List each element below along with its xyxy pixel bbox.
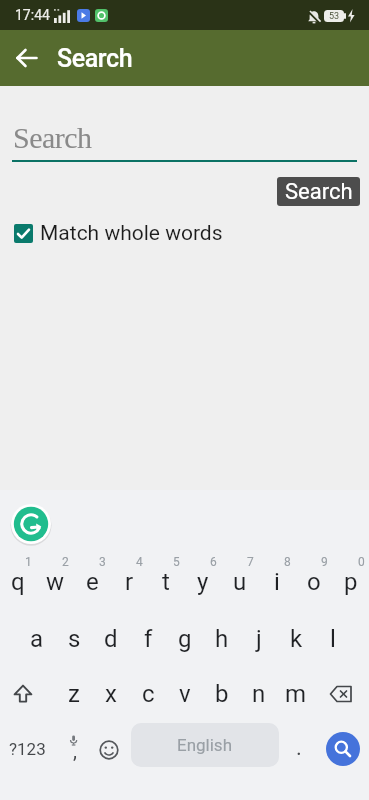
staticText: y [197, 568, 209, 596]
staticText: p [344, 568, 358, 596]
button[interactable]: a [19, 623, 55, 655]
staticText: 17:44 [15, 7, 50, 23]
button[interactable]: q [0, 566, 36, 598]
button[interactable]: k [278, 623, 314, 655]
staticText: m [285, 680, 307, 708]
button[interactable]: p [333, 566, 369, 598]
staticText: a [30, 625, 44, 653]
staticText: 4 [136, 555, 143, 569]
staticText: n [252, 680, 266, 708]
staticText: k [290, 625, 303, 653]
button[interactable]: g [167, 623, 203, 655]
button[interactable]: x [93, 678, 129, 710]
button[interactable] [324, 678, 358, 710]
staticText: 9 [321, 555, 328, 569]
button[interactable]: Match whole words [14, 220, 223, 246]
staticText: g [178, 625, 192, 653]
button[interactable]: y [185, 566, 221, 598]
staticText: t [162, 568, 170, 596]
staticText: . [296, 735, 302, 761]
button[interactable]: h [204, 623, 240, 655]
staticText: x [105, 680, 117, 708]
staticText: i [274, 568, 280, 596]
staticText: Search [285, 179, 353, 205]
button[interactable]: . [291, 733, 307, 763]
staticText: b [215, 680, 229, 708]
staticText: 53 [329, 11, 340, 22]
button[interactable]: f [130, 623, 166, 655]
button[interactable]: d [93, 623, 129, 655]
staticText: Match whole words [40, 221, 223, 246]
staticText: u [233, 568, 247, 596]
staticText: r [125, 568, 134, 596]
button[interactable]: Search [277, 177, 360, 206]
staticText: e [86, 568, 99, 596]
staticText: d [104, 625, 118, 653]
staticText: j [256, 625, 262, 653]
staticText: 7 [247, 555, 254, 569]
staticText: , [73, 739, 77, 762]
button[interactable]: s [56, 623, 92, 655]
staticText: c [142, 680, 155, 708]
button[interactable] [326, 732, 360, 766]
staticText: 6 [210, 555, 217, 569]
button[interactable]: u [222, 566, 258, 598]
button[interactable]: English [131, 723, 279, 767]
button[interactable]: v [167, 678, 203, 710]
staticText: English [177, 735, 233, 755]
staticText: 3 [99, 555, 106, 569]
button[interactable]: r [111, 566, 147, 598]
button[interactable] [10, 41, 44, 75]
staticText: 0 [358, 555, 365, 569]
staticText: v [179, 680, 191, 708]
button[interactable]: l [315, 623, 351, 655]
button[interactable]: i [259, 566, 295, 598]
button[interactable]: c [130, 678, 166, 710]
staticText: q [11, 568, 25, 596]
staticText: s [68, 625, 81, 653]
staticText: l [330, 625, 336, 653]
staticText: z [68, 680, 80, 708]
button[interactable]: m [278, 678, 314, 710]
staticText: ?123 [9, 739, 46, 759]
button[interactable]: z [56, 678, 92, 710]
staticText: f [144, 625, 153, 653]
button[interactable]: o [296, 566, 332, 598]
button[interactable]: n [241, 678, 277, 710]
button[interactable]: w [37, 566, 73, 598]
button[interactable]: , [67, 735, 83, 765]
staticText: Search [13, 121, 92, 154]
staticText: Search [57, 44, 133, 73]
button[interactable]: j [241, 623, 277, 655]
button[interactable] [6, 678, 40, 710]
button[interactable] [98, 739, 120, 761]
staticText: o [307, 568, 321, 596]
staticText: 5 [173, 555, 180, 569]
staticText: w [46, 568, 65, 596]
button[interactable]: t [148, 566, 184, 598]
staticText: h [215, 625, 229, 653]
button[interactable]: b [204, 678, 240, 710]
button[interactable]: ?123 [6, 733, 48, 765]
staticText: 8 [284, 555, 291, 569]
staticText: 1 [25, 555, 32, 569]
button[interactable]: e [74, 566, 110, 598]
staticText: 2 [62, 555, 69, 569]
